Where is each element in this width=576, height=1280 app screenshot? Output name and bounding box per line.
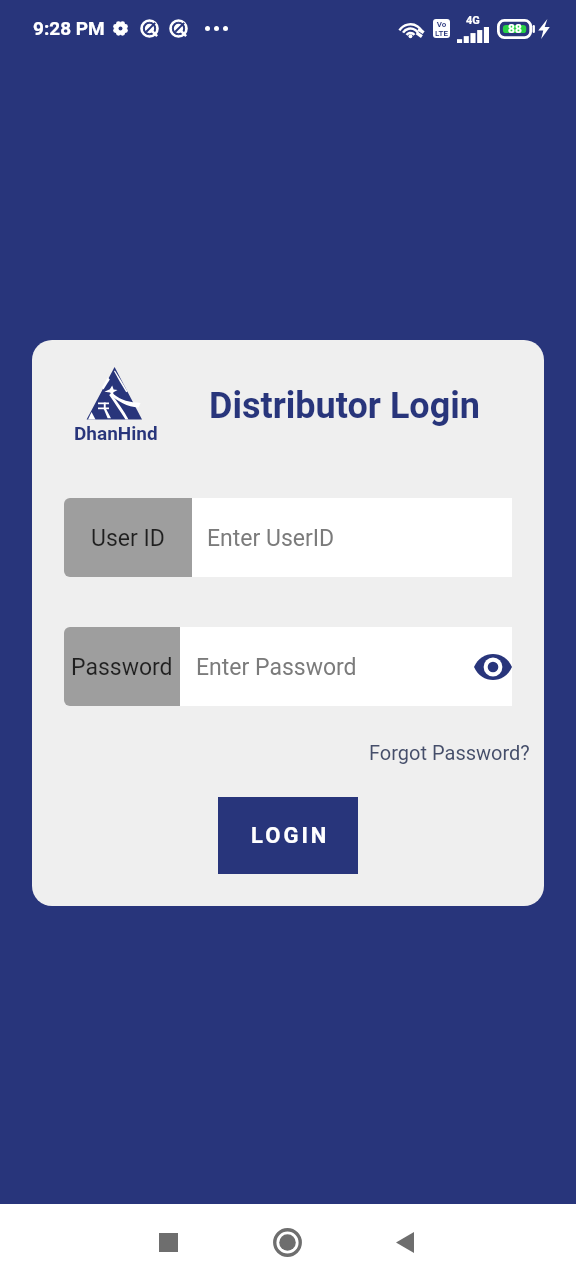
- button[interactable]: Password: [64, 627, 180, 706]
- staticText: 4G: [466, 14, 480, 27]
- staticText: 88: [508, 22, 522, 36]
- staticText: Enter UserID: [207, 525, 335, 552]
- staticText: Forgot Password?: [369, 741, 530, 764]
- button[interactable]: LOGIN: [218, 797, 358, 874]
- button[interactable]: Forgot Password?: [353, 733, 544, 772]
- staticText: Password: [71, 654, 173, 681]
- staticText: Enter Password: [196, 654, 357, 681]
- button[interactable]: Show password: [474, 647, 512, 687]
- button[interactable]: Recents: [144, 1218, 192, 1266]
- staticText: LOGIN: [251, 823, 330, 849]
- staticText: User ID: [91, 525, 165, 552]
- button[interactable]: Enter UserID: [192, 498, 512, 577]
- button[interactable]: Enter Password: [180, 627, 512, 706]
- button[interactable]: User ID: [64, 498, 192, 577]
- staticText: Vo LTE: [435, 20, 448, 38]
- button[interactable]: Home: [263, 1218, 311, 1266]
- staticText: 9:28 PM: [33, 17, 105, 39]
- staticText: DhanHind: [74, 422, 158, 444]
- staticText: Distributor Login: [209, 385, 481, 427]
- button[interactable]: Back: [381, 1218, 429, 1266]
